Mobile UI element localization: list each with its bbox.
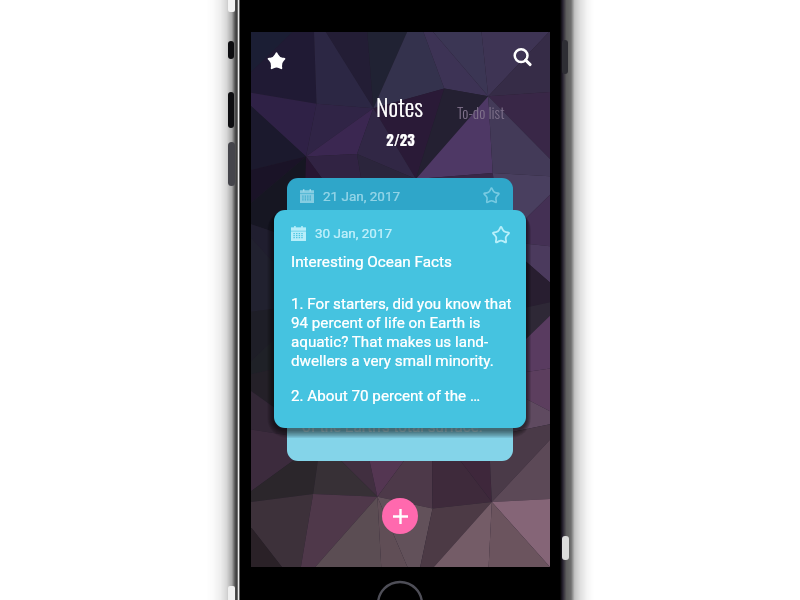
staticText: To-do list xyxy=(457,101,505,124)
button[interactable]: Add note xyxy=(382,498,418,534)
staticText: of the Earth's total surface. xyxy=(302,418,483,436)
staticText: Notes xyxy=(376,88,423,124)
staticText: 30 Jan, 2017 xyxy=(315,225,393,241)
staticText: 21 Jan, 2017 xyxy=(323,188,401,204)
button[interactable]: Favourites xyxy=(262,46,290,74)
staticText: 2. About 70 percent of the … xyxy=(291,387,481,405)
button[interactable]: To-do list xyxy=(457,101,505,124)
staticText: Interesting Ocean Facts xyxy=(291,253,452,271)
staticText: 2/23 xyxy=(251,129,550,150)
button[interactable]: 30 Jan, 2017 xyxy=(274,210,526,428)
button[interactable]: 21 Jan, 2017 xyxy=(287,178,513,236)
button[interactable]: Notes xyxy=(376,88,423,124)
button[interactable]: Search xyxy=(509,44,537,72)
button[interactable]: of the Earth's total surface. xyxy=(287,392,513,461)
staticText: 1. For starters, did you know that 94 pe… xyxy=(291,295,520,370)
